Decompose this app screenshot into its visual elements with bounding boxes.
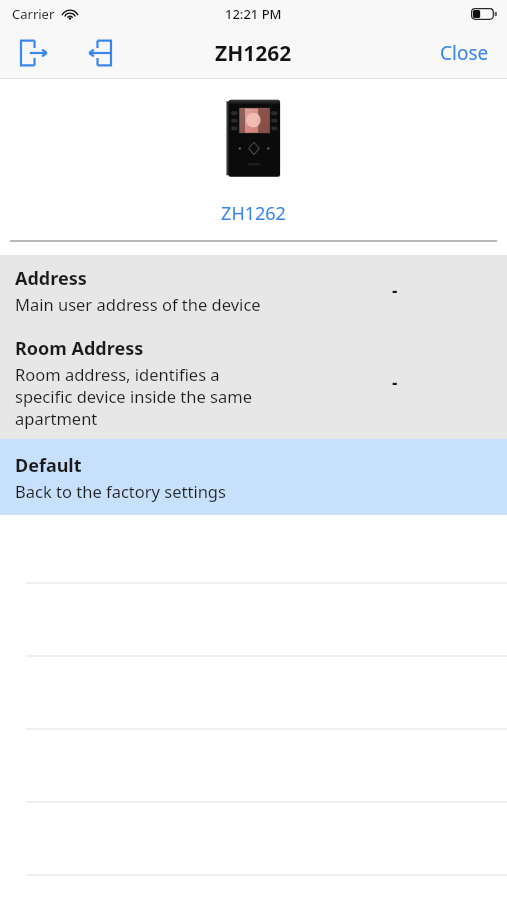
staticText: apartment (15, 407, 98, 429)
staticText: - (392, 279, 398, 302)
staticText: Main user address of the device (15, 293, 261, 315)
button[interactable]: Close (428, 32, 501, 74)
staticText: Carrier (12, 5, 55, 23)
button[interactable]: Room Address (0, 325, 507, 439)
staticText: Room Address (15, 336, 144, 361)
staticText: ZH1262 (215, 39, 292, 68)
button[interactable]: Export settings (12, 31, 56, 75)
staticText: - (392, 371, 398, 394)
staticText: Default (15, 453, 82, 478)
staticText: Back to the factory settings (15, 480, 226, 502)
button[interactable]: Import settings (76, 31, 120, 75)
staticText: specific device inside the same (15, 385, 252, 407)
staticText: 12:21 PM (225, 5, 282, 23)
staticText: ZH1262 (221, 201, 286, 226)
button[interactable]: Address (0, 255, 507, 325)
staticText: Address (15, 266, 87, 291)
staticText: Close (440, 40, 489, 66)
staticText: Room address, identifies a (15, 363, 220, 385)
button[interactable]: Default (0, 439, 507, 515)
button[interactable]: ZH1262 (211, 199, 296, 228)
